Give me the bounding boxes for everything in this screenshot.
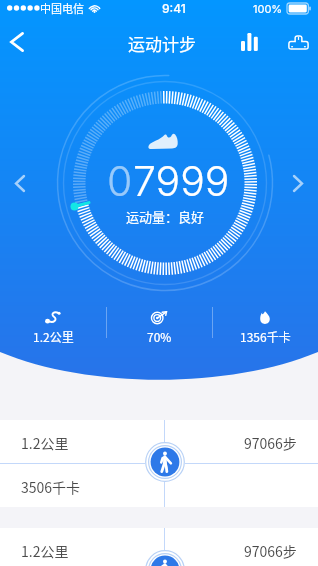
staticText: 运动量：良好 <box>126 207 205 226</box>
staticText: 9:41 <box>162 1 186 16</box>
staticText: 1.2公里 <box>21 541 69 559</box>
staticText: 中国电信 <box>40 0 84 16</box>
staticText: 0 <box>107 156 133 206</box>
staticText: 运动计步 <box>128 31 196 56</box>
staticText: 7999 <box>133 156 230 206</box>
button[interactable]: 70% <box>106 303 212 347</box>
staticText: 97066步 <box>244 433 297 451</box>
staticText: 3506千卡 <box>21 477 81 497</box>
staticText: 1356千卡 <box>240 328 291 345</box>
staticText: 70% <box>147 328 172 345</box>
button[interactable]: 1.2公里 <box>0 420 318 507</box>
button[interactable]: Next day <box>282 165 314 201</box>
button[interactable]: Back <box>0 22 34 62</box>
staticText: 1.2公里 <box>33 328 74 345</box>
staticText: 97066步 <box>244 541 297 559</box>
staticText: 1.2公里 <box>21 433 69 451</box>
button[interactable]: Ranking <box>282 22 314 62</box>
button[interactable]: 1.2公里 <box>0 528 318 566</box>
button[interactable]: Statistics <box>232 22 264 62</box>
button[interactable]: 1.2公里 <box>0 303 106 347</box>
staticText: 100% <box>253 2 283 15</box>
button[interactable]: 1356千卡 <box>212 303 318 347</box>
button[interactable]: Previous day <box>4 165 36 201</box>
